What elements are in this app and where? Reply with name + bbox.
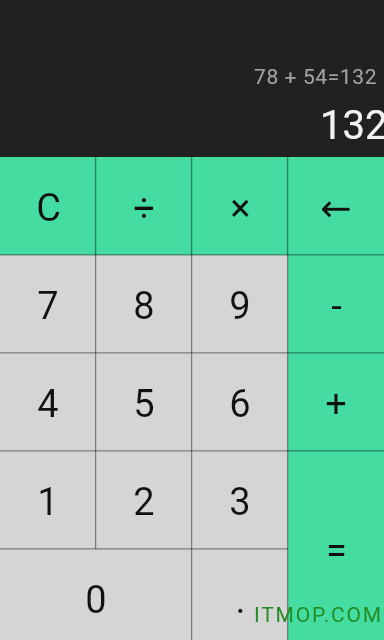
button[interactable]: 2 (96, 451, 192, 549)
staticText: ← (320, 186, 352, 230)
staticText: 4 (37, 382, 59, 427)
staticText: 3 (229, 480, 251, 525)
button[interactable]: × (192, 157, 288, 255)
staticText: 132 (320, 102, 384, 149)
staticText: - (331, 284, 342, 329)
staticText: . (235, 578, 246, 623)
button[interactable]: ÷ (96, 157, 192, 255)
staticText: 78 + 54=132 (254, 65, 378, 90)
staticText: C (36, 186, 61, 231)
staticText: 0 (85, 578, 107, 623)
staticText: 7 (37, 284, 59, 329)
staticText: × (230, 186, 251, 231)
button[interactable]: = (288, 451, 384, 640)
button[interactable]: 4 (0, 353, 96, 451)
button[interactable]: 9 (192, 255, 288, 353)
button[interactable]: 6 (192, 353, 288, 451)
staticText: + (325, 382, 347, 427)
button[interactable]: . (192, 549, 288, 640)
button[interactable]: 5 (96, 353, 192, 451)
button[interactable]: - (288, 255, 384, 353)
button[interactable]: 8 (96, 255, 192, 353)
button[interactable]: 0 (0, 549, 192, 640)
button[interactable]: 1 (0, 451, 96, 549)
staticText: ITMOP.COM (254, 603, 383, 628)
staticText: 2 (133, 480, 155, 525)
staticText: 6 (229, 382, 251, 427)
button[interactable]: 3 (192, 451, 288, 549)
staticText: 1 (37, 480, 59, 525)
button[interactable]: + (288, 353, 384, 451)
staticText: 8 (133, 284, 155, 329)
staticText: = (326, 529, 347, 574)
button[interactable]: 7 (0, 255, 96, 353)
staticText: 5 (133, 382, 155, 427)
button[interactable]: Backspace (288, 157, 384, 255)
staticText: 9 (229, 284, 251, 329)
staticText: ÷ (133, 186, 155, 231)
button[interactable]: C (0, 157, 96, 255)
